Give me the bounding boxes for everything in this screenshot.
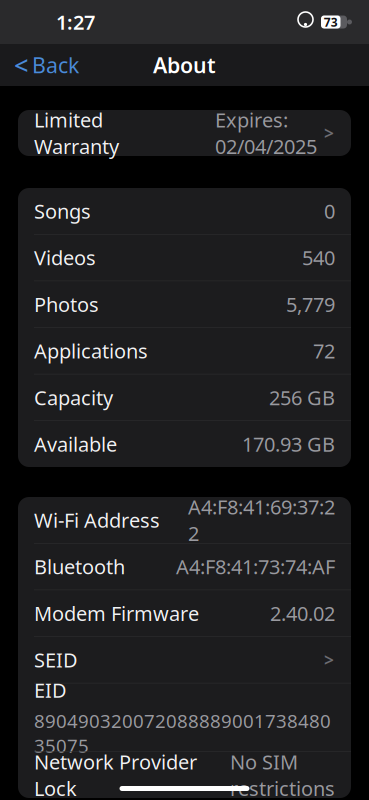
staticText: 5,779 [286,291,335,317]
staticText: Songs [34,198,91,224]
staticText: 170.93 GB [242,431,335,457]
staticText: < [14,48,28,82]
staticText: Back [32,51,79,79]
staticText: Capacity [34,384,113,411]
staticText: > [324,648,334,671]
staticText: 0 [324,198,335,224]
staticText: 73 [324,14,338,30]
staticText: Photos [34,291,99,317]
staticText: > [324,121,334,144]
button[interactable]: Limited Warranty [18,110,351,156]
staticText: EID [34,677,67,703]
staticText: About [153,51,216,79]
staticText: Available [34,431,117,457]
staticText: 2.40.02 [270,600,335,626]
staticText: 89049032007208888900173848035075 [34,708,331,758]
staticText: Wi-Fi Address [34,507,160,533]
staticText: A4:F8:41:69:37:22 [188,493,335,546]
staticText: 1:27 [56,9,95,35]
button[interactable]: Back [4,45,89,85]
staticText: Bluetooth [34,553,125,580]
staticText: Expires: 02/04/2025 [215,106,317,159]
button[interactable]: SEID [18,637,351,683]
staticText: No SIM restrictions [230,748,335,800]
staticText: Videos [34,244,96,271]
staticText: Applications [34,337,148,364]
staticText: Limited Warranty [34,106,119,159]
staticText: 256 GB [269,384,335,411]
staticText: Modem Firmware [34,600,199,626]
staticText: SEID [34,646,78,673]
staticText: 72 [313,337,335,364]
staticText: Network Provider Lock [34,748,197,800]
staticText: 540 [302,244,335,271]
staticText: A4:F8:41:73:74:AF [176,553,335,580]
